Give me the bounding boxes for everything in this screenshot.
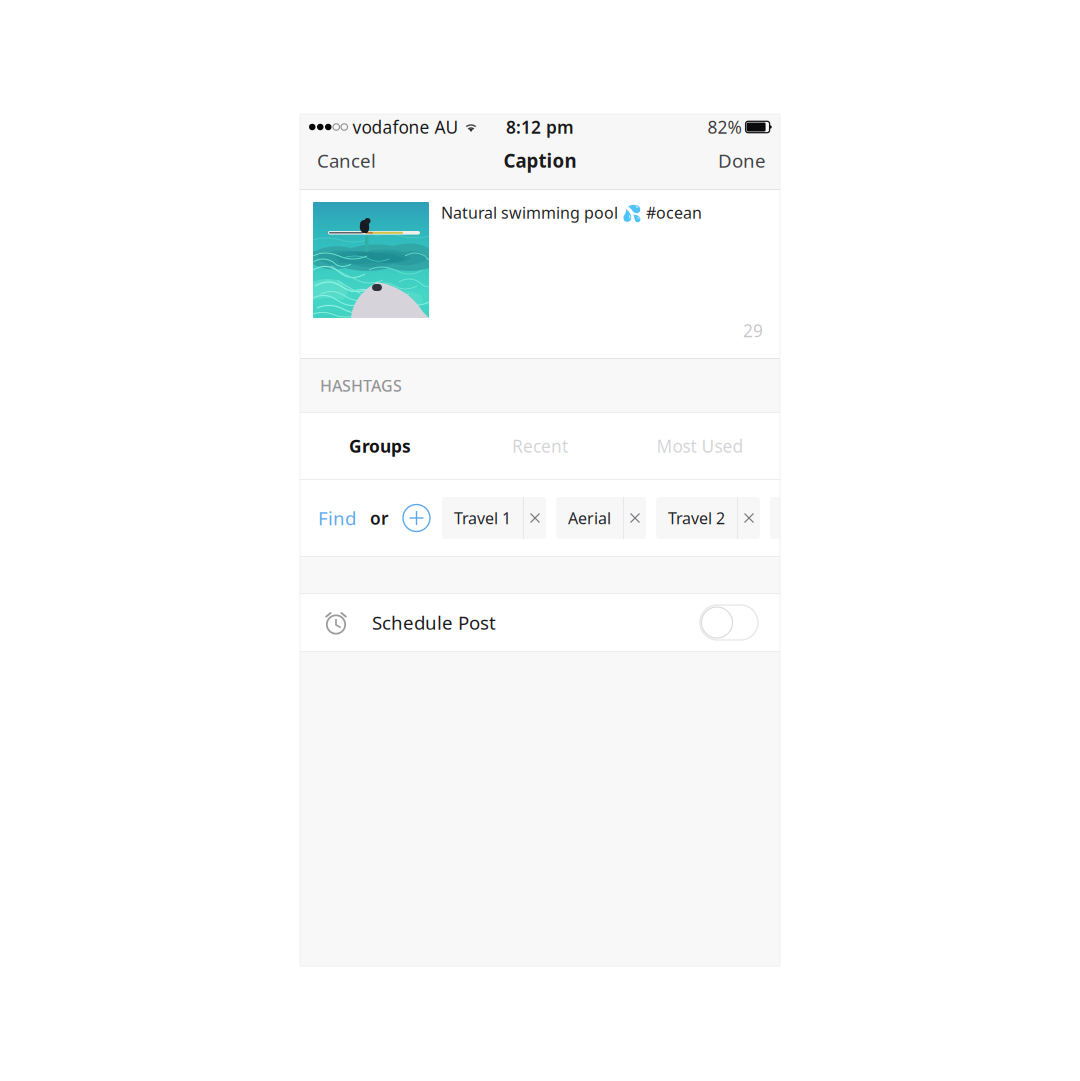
staticText: Caption — [503, 148, 576, 173]
button[interactable]: Schedule Post — [300, 594, 780, 651]
staticText: Cancel — [317, 148, 376, 173]
button[interactable]: Remove Travel 1 — [524, 497, 546, 539]
button[interactable]: Remove Aerial — [624, 497, 646, 539]
button[interactable]: Aerial — [556, 497, 623, 539]
staticText: Done — [718, 148, 766, 173]
staticText: or — [370, 506, 389, 529]
staticText: Find — [318, 506, 356, 530]
button[interactable]: Find — [300, 480, 370, 556]
button[interactable]: Travel 2 — [656, 497, 737, 539]
staticText: Travel 2 — [668, 507, 725, 529]
staticText: Groups — [349, 434, 411, 457]
button[interactable]: Add hashtag group — [389, 480, 442, 556]
staticText: Most Used — [656, 434, 743, 457]
button[interactable]: Remove Travel 2 — [738, 497, 760, 539]
staticText: HASHTAGS — [320, 375, 402, 396]
button[interactable]: Cancel — [300, 140, 388, 189]
staticText: Schedule Post — [372, 610, 496, 635]
staticText: 82% — [708, 115, 742, 138]
button[interactable]: Done — [706, 140, 780, 189]
staticText: Natural swimming pool 💦 #ocean — [441, 202, 702, 223]
button[interactable]: Groups — [300, 413, 460, 479]
staticText: 8:12 pm — [506, 115, 574, 138]
button[interactable]: Recent — [460, 413, 620, 479]
staticText: Travel 1 — [454, 507, 511, 529]
button[interactable]: Most Used — [620, 413, 780, 479]
button[interactable]: Beach — [770, 497, 840, 539]
staticText: vodafone AU — [352, 115, 458, 138]
button[interactable]: Travel 1 — [442, 497, 523, 539]
staticText: 29 — [743, 319, 763, 342]
staticText: Aerial — [568, 507, 611, 529]
staticText: Recent — [512, 434, 568, 457]
